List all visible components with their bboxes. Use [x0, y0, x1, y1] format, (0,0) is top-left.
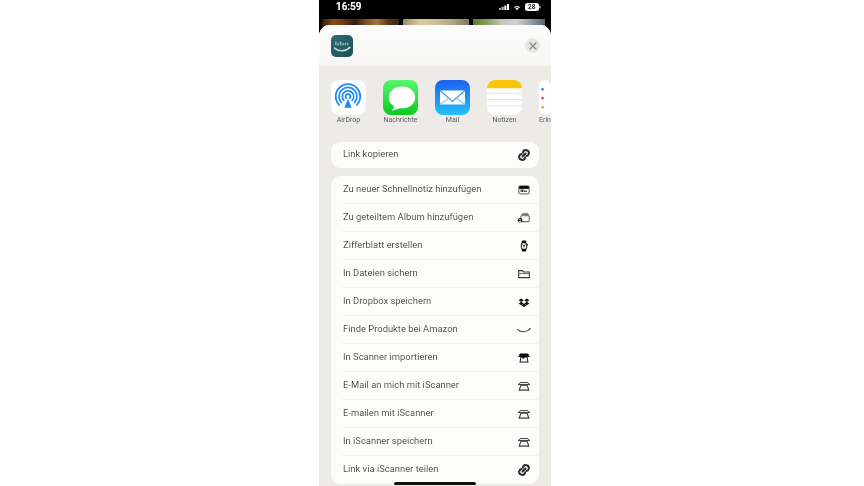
staticText: E-Mail an mich mit iScanner	[343, 379, 460, 390]
button[interactable]: Amazon Photos	[331, 35, 353, 57]
button[interactable]: Notizen	[487, 80, 522, 125]
button[interactable]: Zu geteiltem Album hinzufügen	[331, 204, 539, 232]
staticText: Notizen	[487, 116, 522, 124]
button[interactable]: Finde Produkte bei Amazon	[331, 316, 539, 344]
staticText: Finde Produkte bei Amazon	[343, 323, 458, 334]
staticText: 28	[528, 3, 536, 11]
button[interactable]: In Dateien sichern	[331, 260, 539, 288]
staticText: Link kopieren	[343, 148, 399, 159]
staticText: In iScanner speichern	[343, 435, 433, 446]
staticText: AirDrop	[331, 116, 366, 124]
button[interactable]: Nachrichten	[383, 80, 418, 125]
button[interactable]: AirDrop	[331, 80, 366, 125]
staticText: Zu neuer Schnellnotiz hinzufügen	[343, 183, 482, 194]
staticText: Mail	[435, 116, 470, 124]
staticText: In Dateien sichern	[343, 267, 418, 278]
button[interactable]: Zu neuer Schnellnotiz hinzufügen	[331, 176, 539, 204]
button[interactable]: E-Mail an mich mit iScanner	[331, 372, 539, 400]
staticText: In Dropbox speichern	[343, 295, 432, 306]
button[interactable]: Zifferblatt erstellen	[331, 232, 539, 260]
staticText: Zifferblatt erstellen	[343, 239, 423, 250]
button[interactable]: Erinnerungen	[539, 80, 551, 125]
staticText: Zu geteiltem Album hinzufügen	[343, 211, 474, 222]
button[interactable]: Mail	[435, 80, 470, 125]
button[interactable]: In Dropbox speichern	[331, 288, 539, 316]
staticText: E-mailen mit iScanner	[343, 407, 434, 418]
button[interactable]: Schließen	[525, 38, 540, 53]
button[interactable]: Link via iScanner teilen	[331, 456, 539, 484]
button[interactable]: In iScanner speichern	[331, 428, 539, 456]
staticText: Nachrichten	[383, 116, 418, 124]
staticText: Erinnerungen	[539, 116, 551, 124]
staticText: 16:59	[336, 1, 362, 13]
staticText: Link via iScanner teilen	[343, 463, 439, 474]
staticText: In Scanner importieren	[343, 351, 438, 362]
button[interactable]: Link kopieren	[331, 142, 539, 168]
button[interactable]: In Scanner importieren	[331, 344, 539, 372]
button[interactable]: E-mailen mit iScanner	[331, 400, 539, 428]
